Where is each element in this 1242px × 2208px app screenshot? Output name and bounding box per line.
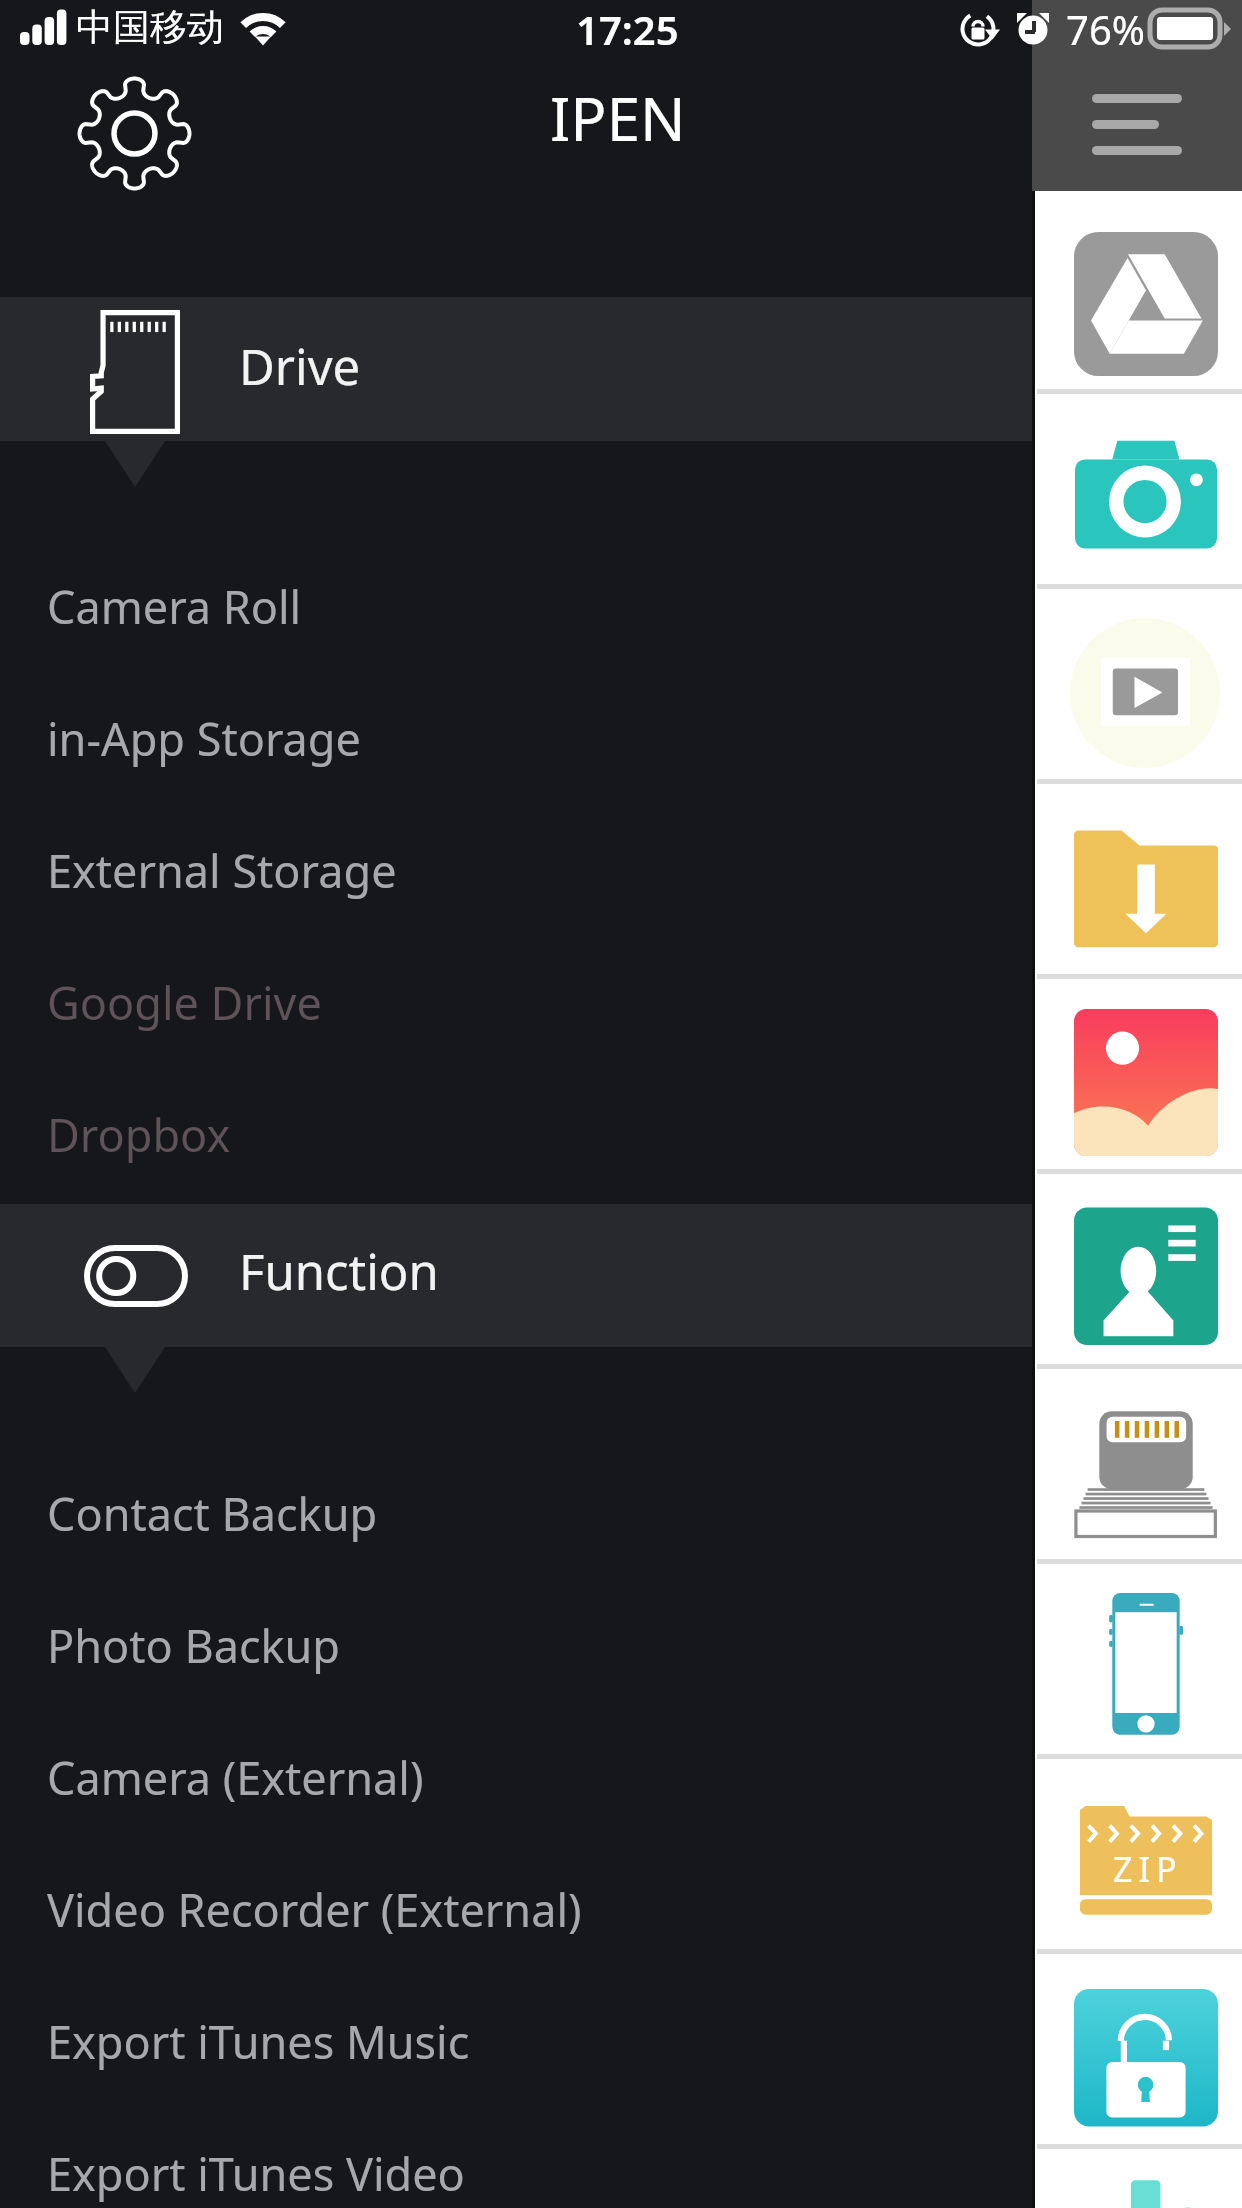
staticText: 17:25 <box>576 2 679 56</box>
staticText: 中国移动 <box>76 4 224 51</box>
staticText: Function <box>239 1238 439 1305</box>
staticText: Contact Backup <box>47 1483 378 1544</box>
staticText: Camera Roll <box>47 576 302 637</box>
button[interactable]: Gallery <box>1032 2149 1242 2208</box>
button[interactable]: Video Recorder (External) <box>0 1839 1032 1971</box>
staticText: Dropbox <box>47 1104 231 1165</box>
button[interactable]: Camera (External) <box>0 1707 1032 1839</box>
button[interactable]: Menu <box>1032 0 1242 191</box>
button[interactable]: in-App Storage <box>0 668 1032 800</box>
button[interactable]: External Storage <box>0 800 1032 932</box>
button[interactable]: Download folder <box>1032 784 1242 979</box>
staticText: Export iTunes Video <box>47 2143 465 2204</box>
button[interactable]: Export iTunes Video <box>0 2103 1032 2208</box>
staticText: 76% <box>1066 2 1145 56</box>
button[interactable]: Dropbox <box>0 1064 1032 1196</box>
button[interactable]: Lock <box>1032 1954 1242 2149</box>
button[interactable]: Photos <box>1032 979 1242 1174</box>
button[interactable]: Zip <box>1032 1759 1242 1954</box>
button[interactable]: Settings <box>77 76 192 191</box>
button[interactable] <box>0 297 1032 441</box>
button[interactable]: Connector <box>1032 1369 1242 1564</box>
staticText: Export iTunes Music <box>47 2011 470 2072</box>
button[interactable]: Photo Backup <box>0 1575 1032 1707</box>
staticText: in-App Storage <box>47 708 361 769</box>
staticText: Video Recorder (External) <box>47 1879 582 1940</box>
button[interactable]: Camera Roll <box>0 536 1032 668</box>
button[interactable]: Video <box>1032 589 1242 784</box>
button[interactable]: Google Drive <box>0 932 1032 1064</box>
staticText: Google Drive <box>47 972 322 1033</box>
staticText: ZIP <box>1113 1846 1183 1892</box>
staticText: External Storage <box>47 840 397 901</box>
staticText: Photo Backup <box>47 1615 341 1676</box>
staticText: IPEN <box>550 77 686 159</box>
staticText: Camera (External) <box>47 1747 424 1808</box>
button[interactable]: Export iTunes Music <box>0 1971 1032 2103</box>
button[interactable] <box>0 1204 1032 1347</box>
button[interactable]: Contact Backup <box>0 1443 1032 1575</box>
button[interactable]: Device <box>1032 1564 1242 1759</box>
button[interactable]: Google Drive <box>1032 199 1242 394</box>
button[interactable]: Contacts <box>1032 1174 1242 1369</box>
staticText: Drive <box>239 333 361 400</box>
button[interactable]: Camera <box>1032 394 1242 589</box>
